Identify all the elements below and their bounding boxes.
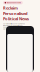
- staticText: Reclaim Personalised Political News: [3, 5, 29, 21]
- staticText: Independent news: [7, 2, 21, 4]
- staticText: Curated political coverage tuned to what…: [3, 23, 25, 30]
